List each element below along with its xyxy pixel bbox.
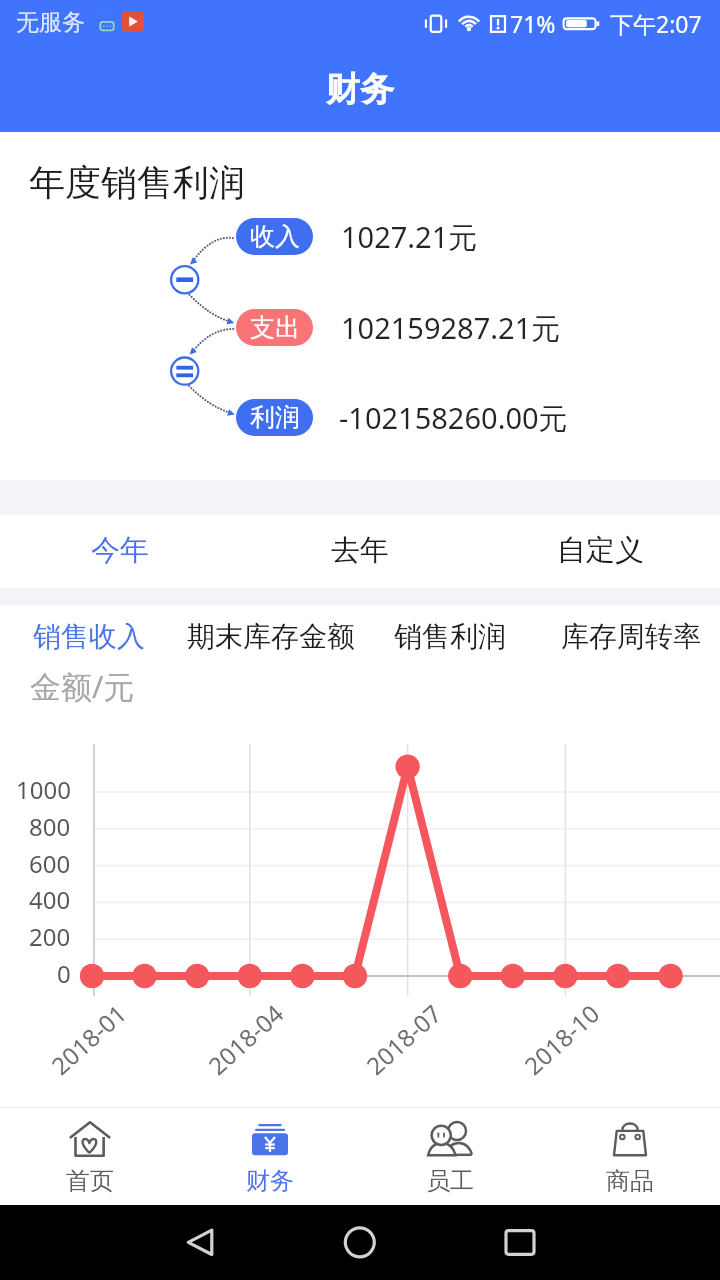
button[interactable]: 今年 bbox=[0, 514, 240, 587]
staticText: 2018-04 bbox=[201, 996, 291, 1082]
staticText: 财务 bbox=[326, 68, 394, 111]
staticText: 销售收入 bbox=[33, 619, 145, 654]
button[interactable]: 收入 bbox=[236, 218, 313, 255]
button[interactable]: Finance bbox=[180, 1108, 360, 1204]
staticText: 2018-07 bbox=[359, 996, 449, 1082]
staticText: 员工 bbox=[426, 1166, 474, 1196]
staticText: 下午2:07 bbox=[610, 8, 702, 39]
staticText: 无服务 bbox=[16, 8, 85, 37]
staticText: 600 bbox=[29, 847, 71, 875]
button[interactable]: 期末库存金额 bbox=[187, 612, 355, 660]
other: Home bbox=[67, 1121, 113, 1157]
staticText: 今年 bbox=[91, 532, 149, 569]
button[interactable]: 库存周转率 bbox=[561, 612, 701, 660]
staticText: 1027.21元 bbox=[341, 217, 478, 257]
staticText: 利润 bbox=[250, 402, 300, 433]
staticText: 2018-01 bbox=[44, 996, 134, 1082]
button[interactable]: 销售收入 bbox=[33, 612, 145, 660]
staticText: 商品 bbox=[606, 1166, 654, 1196]
staticText: 1000 bbox=[16, 773, 71, 801]
staticText: 200 bbox=[29, 920, 71, 948]
staticText: 收入 bbox=[250, 221, 300, 252]
button[interactable]: 自定义 bbox=[480, 514, 720, 587]
button[interactable]: Staff bbox=[360, 1108, 540, 1204]
staticText: 0 bbox=[57, 957, 71, 985]
staticText: 自定义 bbox=[557, 532, 644, 569]
button[interactable]: 利润 bbox=[236, 399, 313, 436]
other: Staff bbox=[427, 1121, 473, 1157]
staticText: 支出 bbox=[250, 312, 300, 343]
staticText: 102159287.21元 bbox=[341, 308, 561, 348]
other: Goods bbox=[607, 1121, 653, 1157]
staticText: 71% bbox=[510, 8, 556, 39]
button[interactable]: Home bbox=[0, 1108, 180, 1204]
staticText: 财务 bbox=[246, 1166, 294, 1196]
button[interactable]: 销售利润 bbox=[394, 612, 506, 660]
staticText: 去年 bbox=[331, 532, 389, 569]
button[interactable]: 去年 bbox=[240, 514, 480, 587]
button[interactable]: 支出 bbox=[236, 309, 313, 346]
staticText: 首页 bbox=[66, 1166, 114, 1196]
staticText: -102158260.00元 bbox=[339, 398, 568, 438]
staticText: 800 bbox=[29, 810, 71, 838]
staticText: 400 bbox=[29, 883, 71, 911]
staticText: 期末库存金额 bbox=[187, 619, 355, 654]
staticText: 销售利润 bbox=[394, 619, 506, 654]
button[interactable]: Goods bbox=[540, 1108, 720, 1204]
other: Finance bbox=[247, 1121, 293, 1157]
staticText: 金额/元 bbox=[30, 665, 135, 707]
staticText: 年度销售利润 bbox=[29, 160, 245, 205]
staticText: 库存周转率 bbox=[561, 619, 701, 654]
staticText: 2018-10 bbox=[517, 996, 607, 1082]
